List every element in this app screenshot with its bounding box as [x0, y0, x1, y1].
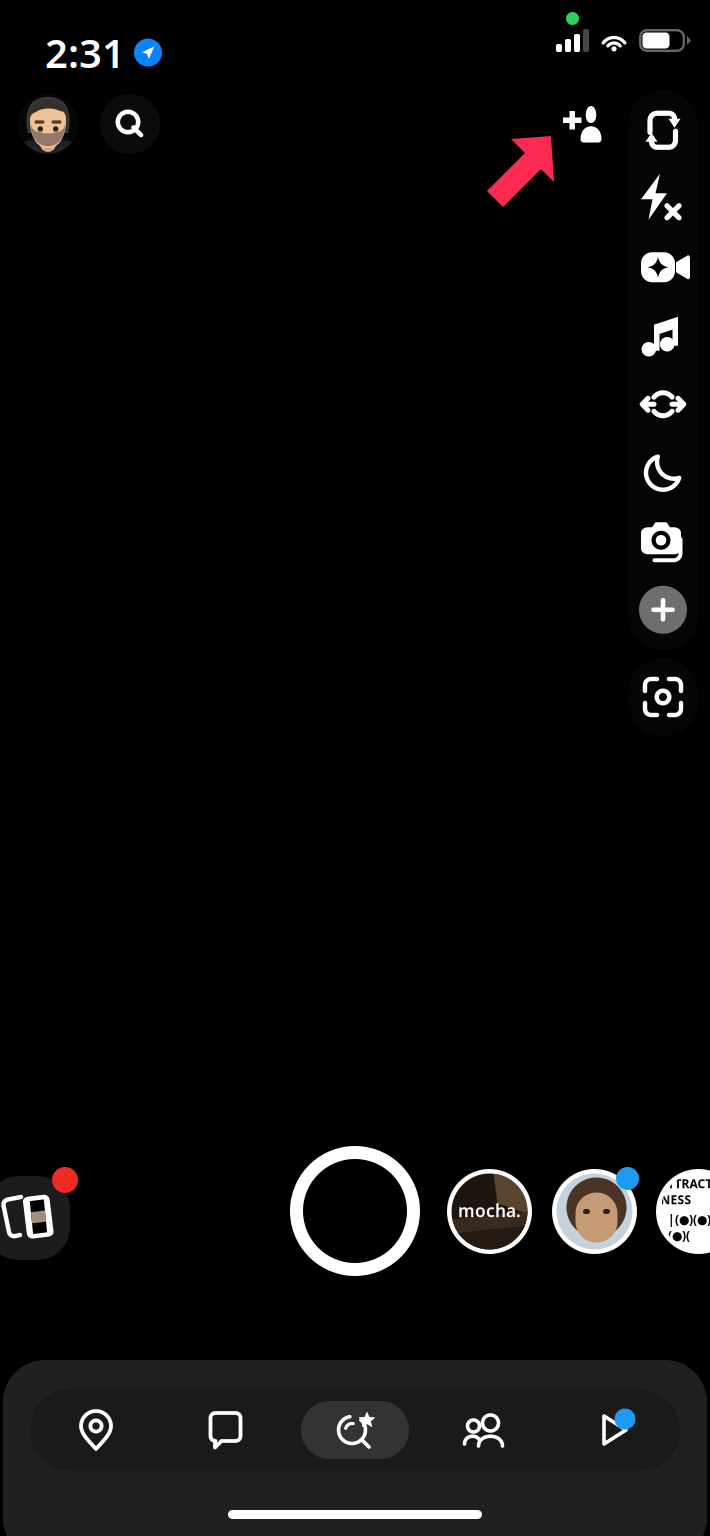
button[interactable]: Camera — [301, 1401, 409, 1459]
button[interactable]: Capture — [290, 1146, 420, 1276]
button[interactable]: Camera — [628, 507, 698, 575]
button[interactable]: Memories — [0, 1168, 90, 1268]
button[interactable]: Map — [42, 1401, 150, 1459]
button[interactable]: Spotlight — [560, 1401, 668, 1459]
button[interactable]: Flip camera — [628, 96, 698, 164]
button[interactable]: Scan — [628, 658, 698, 736]
button[interactable]: Music — [628, 301, 698, 370]
staticText: ATTRACTIVENESS — [660, 1176, 710, 1207]
button[interactable]: Flash off — [628, 164, 698, 233]
button[interactable]: Video camera — [628, 233, 698, 301]
button[interactable]: Add lens — [628, 575, 698, 644]
staticText: mocha. — [458, 1199, 521, 1222]
button[interactable]: Lens carousel — [628, 370, 698, 438]
staticText: 2:31 — [45, 26, 125, 79]
button[interactable]: Profile — [18, 94, 78, 154]
button[interactable]: Friends — [430, 1401, 538, 1459]
button[interactable]: Night mode — [628, 438, 698, 507]
staticText: |(●)(●)(●)(●)( — [668, 1211, 710, 1243]
button[interactable]: Add friends — [545, 89, 615, 159]
button[interactable]: Chat — [171, 1401, 279, 1459]
button[interactable]: Search — [100, 94, 160, 154]
